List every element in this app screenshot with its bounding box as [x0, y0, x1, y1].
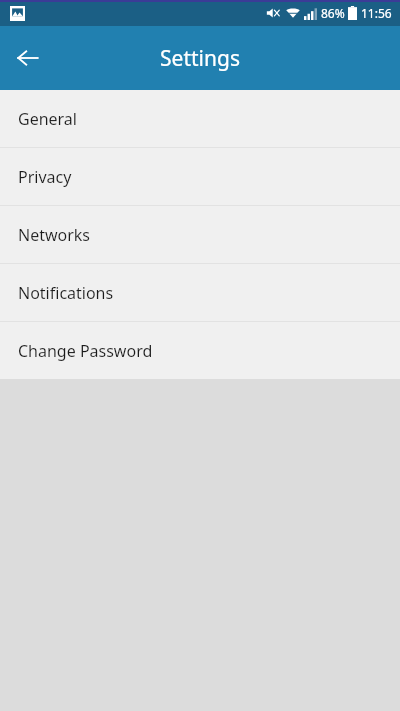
button[interactable]: General — [0, 90, 400, 147]
staticText: Notifications — [18, 282, 114, 304]
staticText: Networks — [18, 224, 91, 246]
button[interactable]: Change Password — [0, 322, 400, 379]
button[interactable]: Back — [10, 40, 46, 76]
staticText: General — [18, 108, 77, 130]
button[interactable]: Networks — [0, 206, 400, 263]
staticText: Change Password — [18, 340, 153, 362]
staticText: Settings — [160, 44, 240, 73]
button[interactable]: Privacy — [0, 148, 400, 205]
staticText: 11:56 — [361, 5, 392, 21]
staticText: Privacy — [18, 166, 72, 188]
button[interactable]: Notifications — [0, 264, 400, 321]
staticText: 86% — [321, 5, 345, 21]
